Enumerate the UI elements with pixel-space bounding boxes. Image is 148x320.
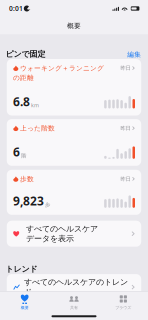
button[interactable]: すべてのヘルスケアデータを表示 <box>7 221 141 247</box>
staticText: 6 <box>13 144 20 160</box>
staticText: ブラウズ <box>115 305 131 310</box>
staticText: 歩 <box>45 201 50 208</box>
button[interactable]: 共有 <box>49 291 99 312</box>
staticText: ウォーキング＋ランニング <box>20 64 104 72</box>
staticText: 9,823 <box>13 193 44 209</box>
button[interactable]: ブラウズ <box>99 291 148 312</box>
staticText: 概要 <box>21 305 29 310</box>
staticText: すべてのヘルスケアデータを表示 <box>26 224 98 244</box>
staticText: 昨日 <box>121 65 131 71</box>
button[interactable]: 概要 <box>0 291 49 312</box>
staticText: ピンで固定 <box>6 49 46 59</box>
button[interactable]: 上った階数 <box>7 119 141 166</box>
staticText: 歩数 <box>20 175 34 183</box>
staticText: すべてのヘルスケアのトレンド <box>24 277 128 297</box>
staticText: 共有 <box>70 305 78 310</box>
staticText: 上った階数 <box>20 124 55 132</box>
staticText: 階 <box>21 152 26 159</box>
staticText: 概要 <box>67 22 81 30</box>
staticText: の距離 <box>13 74 34 82</box>
button[interactable]: すべてのヘルスケアのトレンド <box>7 274 141 300</box>
button[interactable]: 編集 <box>127 50 141 59</box>
staticText: 6.8 <box>13 94 30 109</box>
button[interactable]: 歩数 <box>7 170 141 215</box>
staticText: 編集 <box>127 50 141 59</box>
staticText: km <box>31 101 39 109</box>
staticText: トレンド <box>6 264 38 274</box>
staticText: 昨日 <box>121 176 131 182</box>
staticText: 昨日 <box>121 125 131 131</box>
staticText: 0:01 <box>9 4 23 13</box>
button[interactable]: ウォーキング＋ランニング <box>7 59 141 115</box>
